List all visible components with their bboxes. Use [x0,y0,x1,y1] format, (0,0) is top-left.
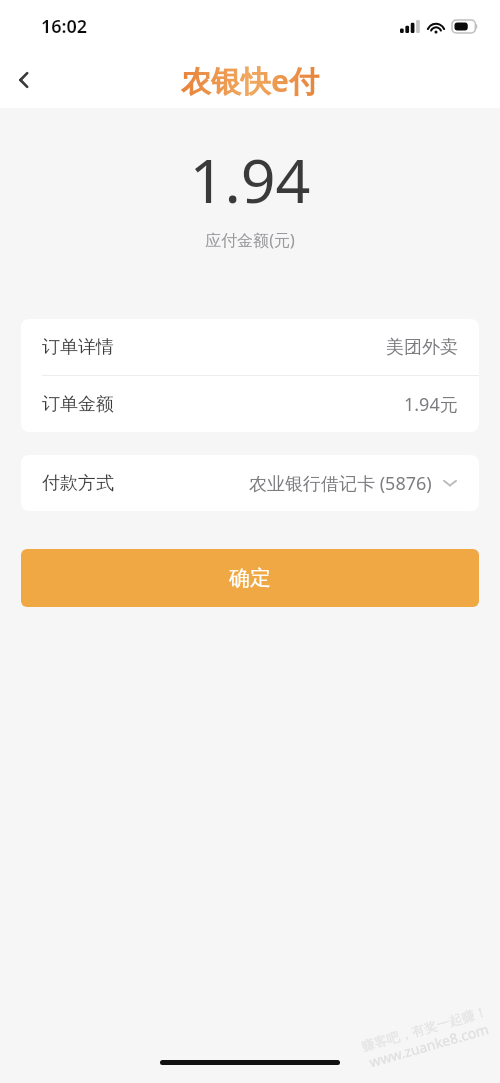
staticText: 应付金额(元) [205,229,295,251]
staticText: 付款方式 [42,472,114,495]
button[interactable]: 确定 [21,549,479,607]
staticText: 1.94 [189,138,311,221]
staticText: 订单详情 [42,336,114,359]
staticText: 农银快e付 [181,60,319,101]
button[interactable]: 付款方式 [21,455,479,511]
staticText: www.zuanke8.com [367,1019,491,1071]
staticText: 订单金额 [42,393,114,416]
button[interactable]: 订单详情 [21,319,479,375]
staticText: 16:02 [41,14,88,39]
staticText: 赚客吧，有奖一起赚！ [360,1003,489,1054]
button[interactable]: Back [0,56,48,104]
button[interactable]: 订单金额 [21,376,479,432]
staticText: 农业银行借记卡 (5876) [249,471,432,496]
staticText: 1.94元 [404,392,458,417]
staticText: 美团外卖 [386,336,458,359]
staticText: 确定 [229,565,271,591]
